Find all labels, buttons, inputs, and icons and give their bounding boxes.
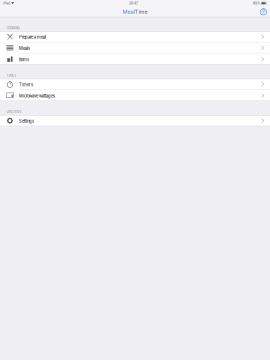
staticText: 89% — [253, 1, 260, 5]
button[interactable]: Help — [257, 6, 270, 17]
staticText: UTILITIES — [6, 110, 21, 114]
staticText: Prepare a meal — [19, 35, 46, 40]
button[interactable]: Microwave wattages — [0, 90, 270, 101]
button[interactable]: Items — [0, 54, 270, 65]
staticText: Items — [19, 57, 29, 62]
staticText: iPad — [3, 1, 10, 5]
button[interactable]: Meals — [0, 42, 270, 54]
staticText: 20:47 — [129, 1, 138, 5]
staticText: Settings — [19, 119, 34, 124]
staticText: TOOLS — [6, 73, 16, 77]
staticText: Timers — [19, 82, 33, 87]
staticText: Meals — [19, 46, 30, 51]
button[interactable]: Settings — [0, 115, 270, 126]
button[interactable]: Prepare a meal — [0, 31, 270, 42]
button[interactable]: Timers — [0, 79, 270, 90]
staticText: ? — [262, 8, 265, 15]
staticText: Meal — [122, 8, 134, 15]
staticText: Microwave wattages — [19, 94, 55, 99]
staticText: COOKING — [6, 26, 19, 30]
staticText: Time — [134, 8, 147, 15]
